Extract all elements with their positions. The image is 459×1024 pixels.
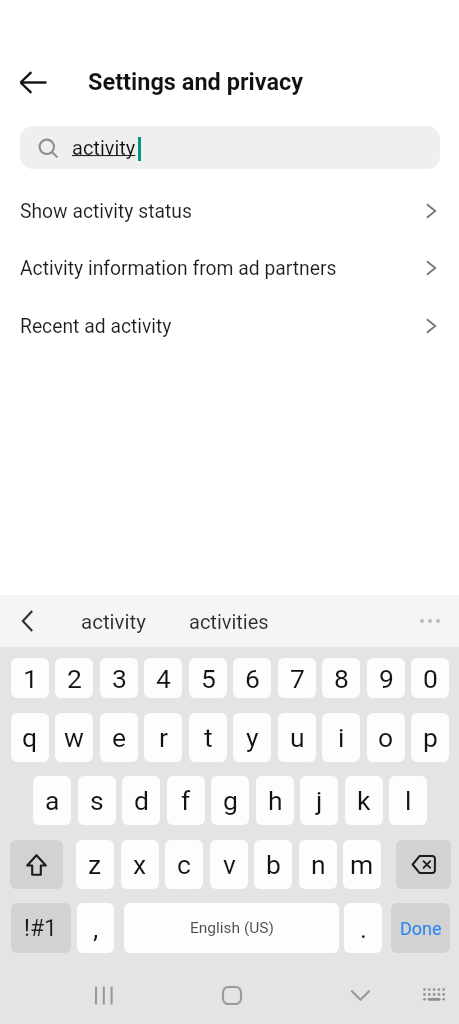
button[interactable]: d bbox=[122, 776, 160, 825]
button[interactable]: Recent ad activity bbox=[0, 298, 459, 354]
staticText: y bbox=[246, 722, 259, 753]
button[interactable]: w bbox=[55, 713, 93, 762]
staticText: Show activity status bbox=[20, 200, 192, 223]
staticText: 7 bbox=[290, 663, 305, 694]
staticText: 5 bbox=[201, 663, 216, 694]
button[interactable]: z bbox=[76, 840, 114, 889]
button[interactable]: k bbox=[345, 776, 383, 825]
button[interactable]: . bbox=[344, 903, 382, 953]
staticText: k bbox=[357, 785, 371, 816]
staticText: f bbox=[181, 785, 191, 816]
button[interactable]: activities bbox=[189, 610, 269, 633]
staticText: !#1 bbox=[24, 915, 58, 942]
staticText: 9 bbox=[379, 663, 394, 694]
staticText: Settings and privacy bbox=[88, 68, 304, 96]
staticText: l bbox=[405, 785, 412, 816]
button[interactable]: Change keyboard bbox=[403, 965, 459, 1024]
button[interactable]: t bbox=[189, 713, 227, 762]
staticText: English (US) bbox=[190, 919, 274, 937]
button[interactable]: f bbox=[167, 776, 205, 825]
button[interactable]: Backspace bbox=[396, 840, 451, 889]
staticText: Recent ad activity bbox=[20, 315, 172, 338]
staticText: 1 bbox=[23, 663, 38, 694]
button[interactable]: Home bbox=[202, 965, 262, 1024]
button[interactable]: !#1 bbox=[11, 903, 71, 953]
staticText: activity bbox=[72, 136, 136, 159]
staticText: . bbox=[360, 913, 367, 944]
staticText: 4 bbox=[156, 663, 171, 694]
staticText: i bbox=[338, 722, 345, 753]
button[interactable]: y bbox=[233, 713, 271, 762]
button[interactable]: , bbox=[77, 903, 114, 953]
button[interactable]: 9 bbox=[367, 658, 405, 698]
button[interactable]: x bbox=[121, 840, 159, 889]
staticText: p bbox=[423, 722, 438, 753]
staticText: q bbox=[22, 722, 38, 753]
staticText: b bbox=[266, 849, 281, 880]
button[interactable]: v bbox=[210, 840, 248, 889]
button[interactable]: r bbox=[144, 713, 182, 762]
staticText: Activity information from ad partners bbox=[20, 257, 337, 280]
button[interactable]: a bbox=[33, 776, 71, 825]
button[interactable]: 3 bbox=[100, 658, 138, 698]
staticText: u bbox=[290, 722, 305, 753]
button[interactable]: Show activity status bbox=[0, 183, 459, 239]
button[interactable]: Activity information from ad partners bbox=[0, 240, 459, 296]
staticText: 8 bbox=[334, 663, 349, 694]
button[interactable]: g bbox=[211, 776, 249, 825]
button[interactable]: i bbox=[322, 713, 360, 762]
staticText: n bbox=[311, 849, 326, 880]
staticText: v bbox=[223, 849, 236, 880]
button[interactable]: s bbox=[78, 776, 116, 825]
button[interactable]: b bbox=[254, 840, 292, 889]
staticText: s bbox=[90, 785, 104, 816]
button[interactable]: English (US) bbox=[124, 903, 339, 953]
button[interactable]: m bbox=[343, 840, 381, 889]
staticText: j bbox=[316, 785, 323, 816]
staticText: g bbox=[223, 785, 238, 816]
button[interactable]: Shift bbox=[10, 840, 63, 889]
button[interactable]: activity bbox=[81, 610, 146, 634]
button[interactable]: 1 bbox=[11, 658, 49, 698]
staticText: m bbox=[350, 849, 374, 880]
button[interactable]: Previous suggestions bbox=[12, 595, 42, 647]
button[interactable]: 0 bbox=[411, 658, 449, 698]
button[interactable]: 4 bbox=[144, 658, 182, 698]
button[interactable]: 6 bbox=[233, 658, 271, 698]
staticText: Done bbox=[400, 918, 442, 939]
button[interactable]: h bbox=[256, 776, 294, 825]
staticText: x bbox=[133, 849, 147, 880]
button[interactable]: 2 bbox=[55, 658, 93, 698]
button[interactable]: p bbox=[411, 713, 449, 762]
staticText: 6 bbox=[245, 663, 260, 694]
staticText: z bbox=[88, 849, 102, 880]
button[interactable]: 7 bbox=[278, 658, 316, 698]
staticText: w bbox=[64, 722, 84, 753]
staticText: 2 bbox=[67, 663, 82, 694]
button[interactable]: Done bbox=[391, 903, 450, 953]
staticText: r bbox=[159, 722, 168, 753]
button[interactable]: Hide keyboard bbox=[330, 965, 390, 1024]
staticText: d bbox=[134, 785, 149, 816]
button[interactable]: Navigate up bbox=[12, 61, 54, 103]
staticText: 3 bbox=[112, 663, 127, 694]
button[interactable]: o bbox=[367, 713, 405, 762]
button[interactable]: 8 bbox=[322, 658, 360, 698]
button[interactable]: More options bbox=[410, 595, 450, 647]
staticText: a bbox=[45, 785, 60, 816]
button[interactable]: activity bbox=[20, 126, 440, 169]
button[interactable]: n bbox=[299, 840, 337, 889]
staticText: e bbox=[112, 722, 127, 753]
staticText: h bbox=[268, 785, 283, 816]
button[interactable]: e bbox=[100, 713, 138, 762]
staticText: t bbox=[204, 722, 213, 753]
button[interactable]: u bbox=[278, 713, 316, 762]
button[interactable]: l bbox=[389, 776, 427, 825]
button[interactable]: q bbox=[11, 713, 49, 762]
staticText: , bbox=[93, 913, 99, 944]
button[interactable]: c bbox=[165, 840, 203, 889]
button[interactable]: Recent apps bbox=[74, 965, 134, 1024]
button[interactable]: j bbox=[300, 776, 338, 825]
staticText: c bbox=[177, 849, 191, 880]
button[interactable]: 5 bbox=[189, 658, 227, 698]
